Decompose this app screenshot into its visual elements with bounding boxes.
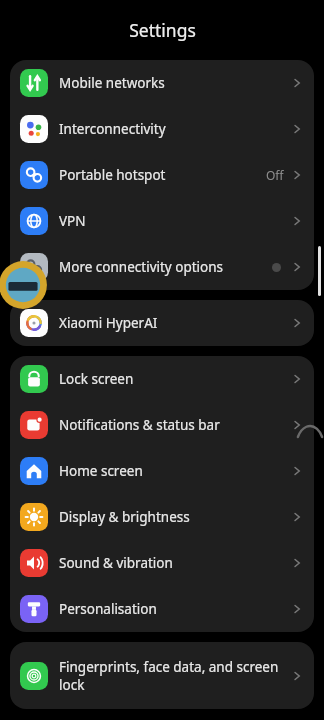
- staticText: Personalisation: [59, 600, 284, 618]
- staticText: Xiaomi HyperAI: [59, 314, 284, 332]
- button[interactable]: Mobile networks: [10, 60, 314, 106]
- button[interactable]: Sound & vibration: [10, 540, 314, 586]
- button[interactable]: Personalisation: [10, 586, 314, 632]
- button[interactable]: Notifications & status bar: [10, 402, 314, 448]
- staticText: Display & brightness: [59, 508, 284, 526]
- button[interactable]: More connectivity options: [10, 244, 314, 290]
- button[interactable]: Fingerprints, face data, and screen lock: [10, 642, 314, 709]
- button[interactable]: Xiaomi HyperAI: [10, 300, 314, 346]
- staticText: VPN: [59, 212, 284, 230]
- staticText: More connectivity options: [59, 258, 266, 276]
- staticText: Portable hotspot: [59, 166, 260, 184]
- staticText: Lock screen: [59, 370, 284, 388]
- staticText: Mobile networks: [59, 74, 284, 92]
- button[interactable]: Display & brightness: [10, 494, 314, 540]
- staticText: Home screen: [59, 462, 284, 480]
- staticText: Notifications & status bar: [59, 416, 284, 434]
- staticText: Off: [266, 167, 284, 183]
- staticText: Fingerprints, face data, and screen lock: [59, 658, 284, 694]
- button[interactable]: Home screen: [10, 448, 314, 494]
- button[interactable]: Portable hotspot: [10, 152, 314, 198]
- staticText: Interconnectivity: [59, 120, 284, 138]
- button[interactable]: VPN: [10, 198, 314, 244]
- button[interactable]: Lock screen: [10, 356, 314, 402]
- button[interactable]: Interconnectivity: [10, 106, 314, 152]
- staticText: Sound & vibration: [59, 554, 284, 572]
- staticText: Settings: [129, 18, 196, 42]
